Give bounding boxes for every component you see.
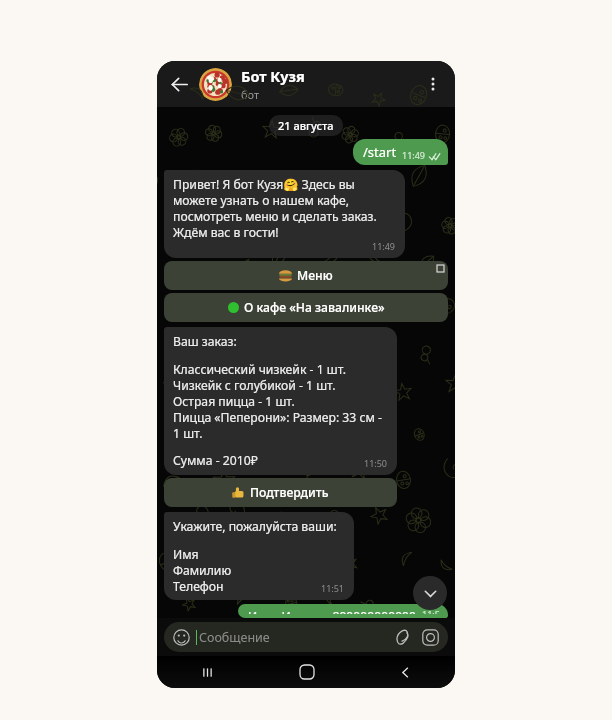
- staticText: Классический чизкейк - 1 шт. Чизкейк с г…: [173, 361, 388, 441]
- staticText: Иван Иванов, 899999999999: [248, 608, 417, 614]
- button[interactable]: 21 августа: [278, 118, 334, 133]
- button[interactable]: Укажите, пожалуйста ваши:: [164, 512, 354, 600]
- button[interactable]: Back: [161, 66, 197, 102]
- button[interactable]: Подтвердить: [164, 478, 397, 507]
- staticText: Привет! Я бот Кузя🤗 Здесь вы можете узна…: [173, 176, 396, 240]
- staticText: Бот Кузя: [241, 66, 305, 86]
- button[interactable]: Attach: [392, 626, 414, 648]
- staticText: Меню: [297, 267, 333, 284]
- button[interactable]: Иван Иванов, 899999999999: [238, 604, 448, 618]
- button[interactable]: Emoji: [171, 627, 191, 647]
- staticText: 11:49: [402, 149, 426, 161]
- staticText: Имя Фамилию Телефон: [173, 546, 232, 594]
- button[interactable]: Emoji: [164, 622, 448, 652]
- staticText: 11:51: [321, 582, 345, 594]
- button[interactable]: Back: [356, 656, 455, 688]
- staticText: Укажите, пожалуйста ваши:: [173, 518, 337, 535]
- staticText: Подтвердить: [250, 484, 329, 501]
- staticText: бот: [241, 87, 260, 102]
- staticText: /start: [363, 143, 397, 161]
- button[interactable]: Recents: [157, 656, 257, 688]
- staticText: 11:50: [364, 457, 388, 469]
- staticText: Сообщение: [199, 629, 270, 646]
- button[interactable]: Home: [257, 656, 356, 688]
- button[interactable]: Camera: [419, 626, 441, 648]
- button[interactable]: Меню: [164, 261, 448, 290]
- button[interactable]: More options: [417, 68, 449, 100]
- button[interactable]: /start: [353, 139, 448, 165]
- staticText: Ваш заказ:: [173, 333, 237, 350]
- staticText: О кафе «На завалинке»: [244, 299, 385, 316]
- button[interactable]: Scroll to bottom: [413, 576, 447, 610]
- button[interactable]: Ваш заказ:: [164, 327, 397, 475]
- staticText: 21 августа: [278, 118, 334, 133]
- button[interactable]: О кафе «На завалинке»: [164, 293, 448, 322]
- staticText: 11:49: [372, 240, 396, 252]
- staticText: Сумма - 2010₽: [173, 452, 258, 469]
- staticText: 11:5: [422, 608, 440, 614]
- button[interactable]: Привет! Я бот Кузя🤗 Здесь вы можете узна…: [164, 170, 405, 258]
